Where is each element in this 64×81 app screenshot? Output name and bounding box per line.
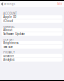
staticText: ACCOUNT: [3, 12, 16, 15]
staticText: DISPLAY: [3, 38, 14, 41]
button[interactable]: Apple ID: [2, 15, 62, 19]
staticText: Settings: [4, 2, 15, 6]
staticText: About: [3, 28, 12, 32]
button[interactable]: Brightness: [2, 41, 62, 45]
staticText: iCloud: [3, 19, 13, 23]
staticText: PRIVACY: [3, 51, 15, 54]
staticText: Software Update: [3, 32, 25, 36]
staticText: Text Size: [3, 45, 13, 49]
button[interactable]: Software Update: [2, 32, 62, 36]
staticText: GENERAL: [3, 25, 14, 28]
button[interactable]: iCloud: [2, 19, 62, 23]
button[interactable]: Text Size: [2, 45, 62, 49]
button[interactable]: Settings: [0, 2, 15, 6]
staticText: Apple ID: [3, 15, 16, 19]
staticText: Edit: [57, 2, 62, 6]
staticText: Location: [3, 54, 14, 57]
staticText: Analytics: [3, 58, 14, 61]
button[interactable]: Analytics: [2, 58, 62, 62]
staticText: Brightness: [3, 41, 18, 45]
button[interactable]: About: [2, 28, 62, 32]
button[interactable]: Edit: [57, 2, 64, 6]
button[interactable]: Location: [2, 54, 62, 58]
